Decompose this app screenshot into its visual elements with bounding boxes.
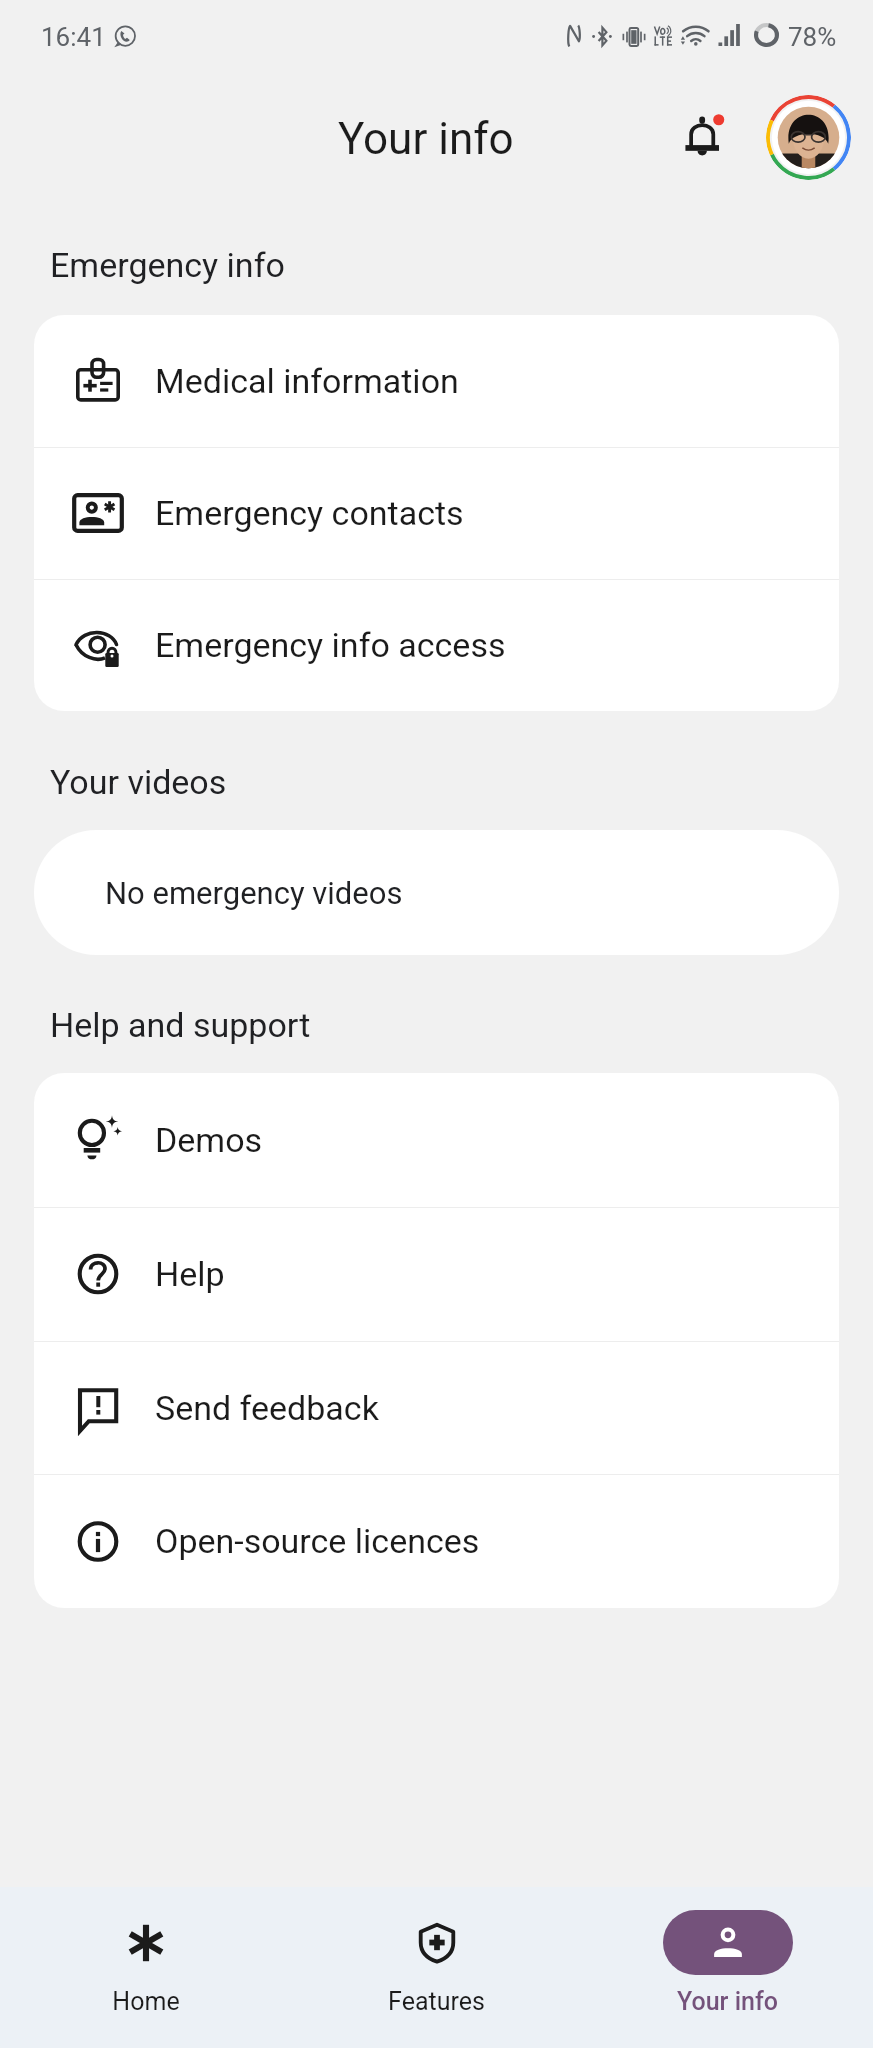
button[interactable]: Open-source licences (34, 1474, 839, 1608)
staticText: Emergency contacts (155, 493, 464, 533)
staticText: Emergency info access (155, 625, 506, 665)
button[interactable]: Your info (582, 1887, 873, 2016)
button[interactable]: Medical information (34, 315, 839, 447)
button[interactable]: Account (766, 95, 851, 180)
button[interactable]: Send feedback (34, 1341, 839, 1475)
staticText: Send feedback (155, 1388, 379, 1428)
staticText: Demos (155, 1120, 263, 1160)
staticText: Open-source licences (155, 1521, 480, 1561)
button[interactable]: Notifications (662, 95, 746, 179)
button[interactable]: Emergency info access (34, 579, 839, 711)
staticText: Your info (677, 1987, 778, 2016)
staticText: Medical information (155, 361, 459, 401)
staticText: Features (388, 1987, 485, 2016)
staticText: Your videos (50, 762, 227, 802)
button[interactable]: No emergency videos (34, 830, 839, 955)
staticText: 16:41 (41, 22, 106, 52)
button[interactable]: Emergency contacts (34, 447, 839, 579)
staticText: 78% (788, 22, 837, 52)
staticText: Home (112, 1987, 180, 2016)
staticText: No emergency videos (105, 875, 403, 911)
staticText: Your info (338, 113, 514, 165)
button[interactable]: Features (291, 1887, 582, 2016)
button[interactable]: Help (34, 1207, 839, 1341)
button[interactable]: Demos (34, 1073, 839, 1207)
staticText: Help and support (50, 1005, 311, 1045)
staticText: Emergency info (50, 245, 285, 285)
button[interactable]: Home (0, 1887, 291, 2016)
staticText: Help (155, 1254, 225, 1294)
